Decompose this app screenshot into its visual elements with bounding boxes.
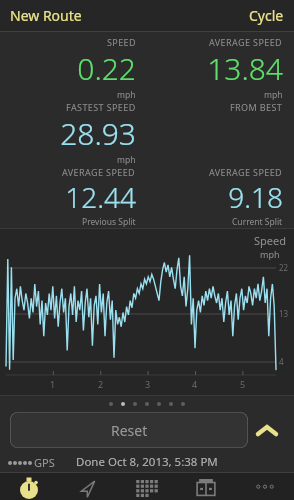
staticText: 12.44 xyxy=(65,178,136,216)
staticText: 13 xyxy=(279,308,289,319)
staticText: GPS xyxy=(34,455,55,470)
staticText: 4 xyxy=(192,378,198,390)
staticText: mph xyxy=(117,89,136,101)
staticText: mph xyxy=(264,89,283,101)
staticText: mph xyxy=(260,248,280,260)
button[interactable]: More xyxy=(235,473,294,500)
staticText: 22 xyxy=(279,262,289,273)
button[interactable]: Cycle xyxy=(239,6,294,25)
staticText: 0.22 xyxy=(77,48,136,89)
staticText: 4 xyxy=(279,356,284,367)
staticText: SPEED xyxy=(107,36,136,48)
staticText: AVERAGE SPEED xyxy=(62,166,136,178)
button[interactable]: Expand xyxy=(248,412,286,448)
staticText: Speed xyxy=(254,233,286,248)
staticText: 28.93 xyxy=(60,113,136,154)
button[interactable]: Map xyxy=(58,473,117,500)
button[interactable]: Stopwatch xyxy=(0,473,58,500)
staticText: FASTEST SPEED xyxy=(66,101,136,113)
staticText: 1 xyxy=(50,378,56,390)
staticText: 3 xyxy=(145,378,151,390)
staticText: 9.18 xyxy=(228,178,283,216)
staticText: Previous Split xyxy=(82,216,136,228)
staticText: AVERAGE SPEED xyxy=(209,36,283,48)
button[interactable]: Reset xyxy=(10,412,248,448)
button[interactable]: History xyxy=(176,473,235,500)
staticText: Done Oct 8, 2013, 5:38 PM xyxy=(76,454,218,470)
staticText: FROM BEST xyxy=(230,101,283,113)
staticText: AVERAGE SPEED xyxy=(209,166,283,178)
staticText: 13.84 xyxy=(207,48,283,89)
staticText: 5 xyxy=(240,378,246,390)
staticText: mph xyxy=(117,154,136,166)
button[interactable]: New Route xyxy=(0,6,92,25)
staticText: Current Split xyxy=(232,216,283,228)
button[interactable]: Calendar xyxy=(117,473,176,500)
staticText: Reset xyxy=(111,421,148,440)
staticText: 2 xyxy=(98,378,104,390)
